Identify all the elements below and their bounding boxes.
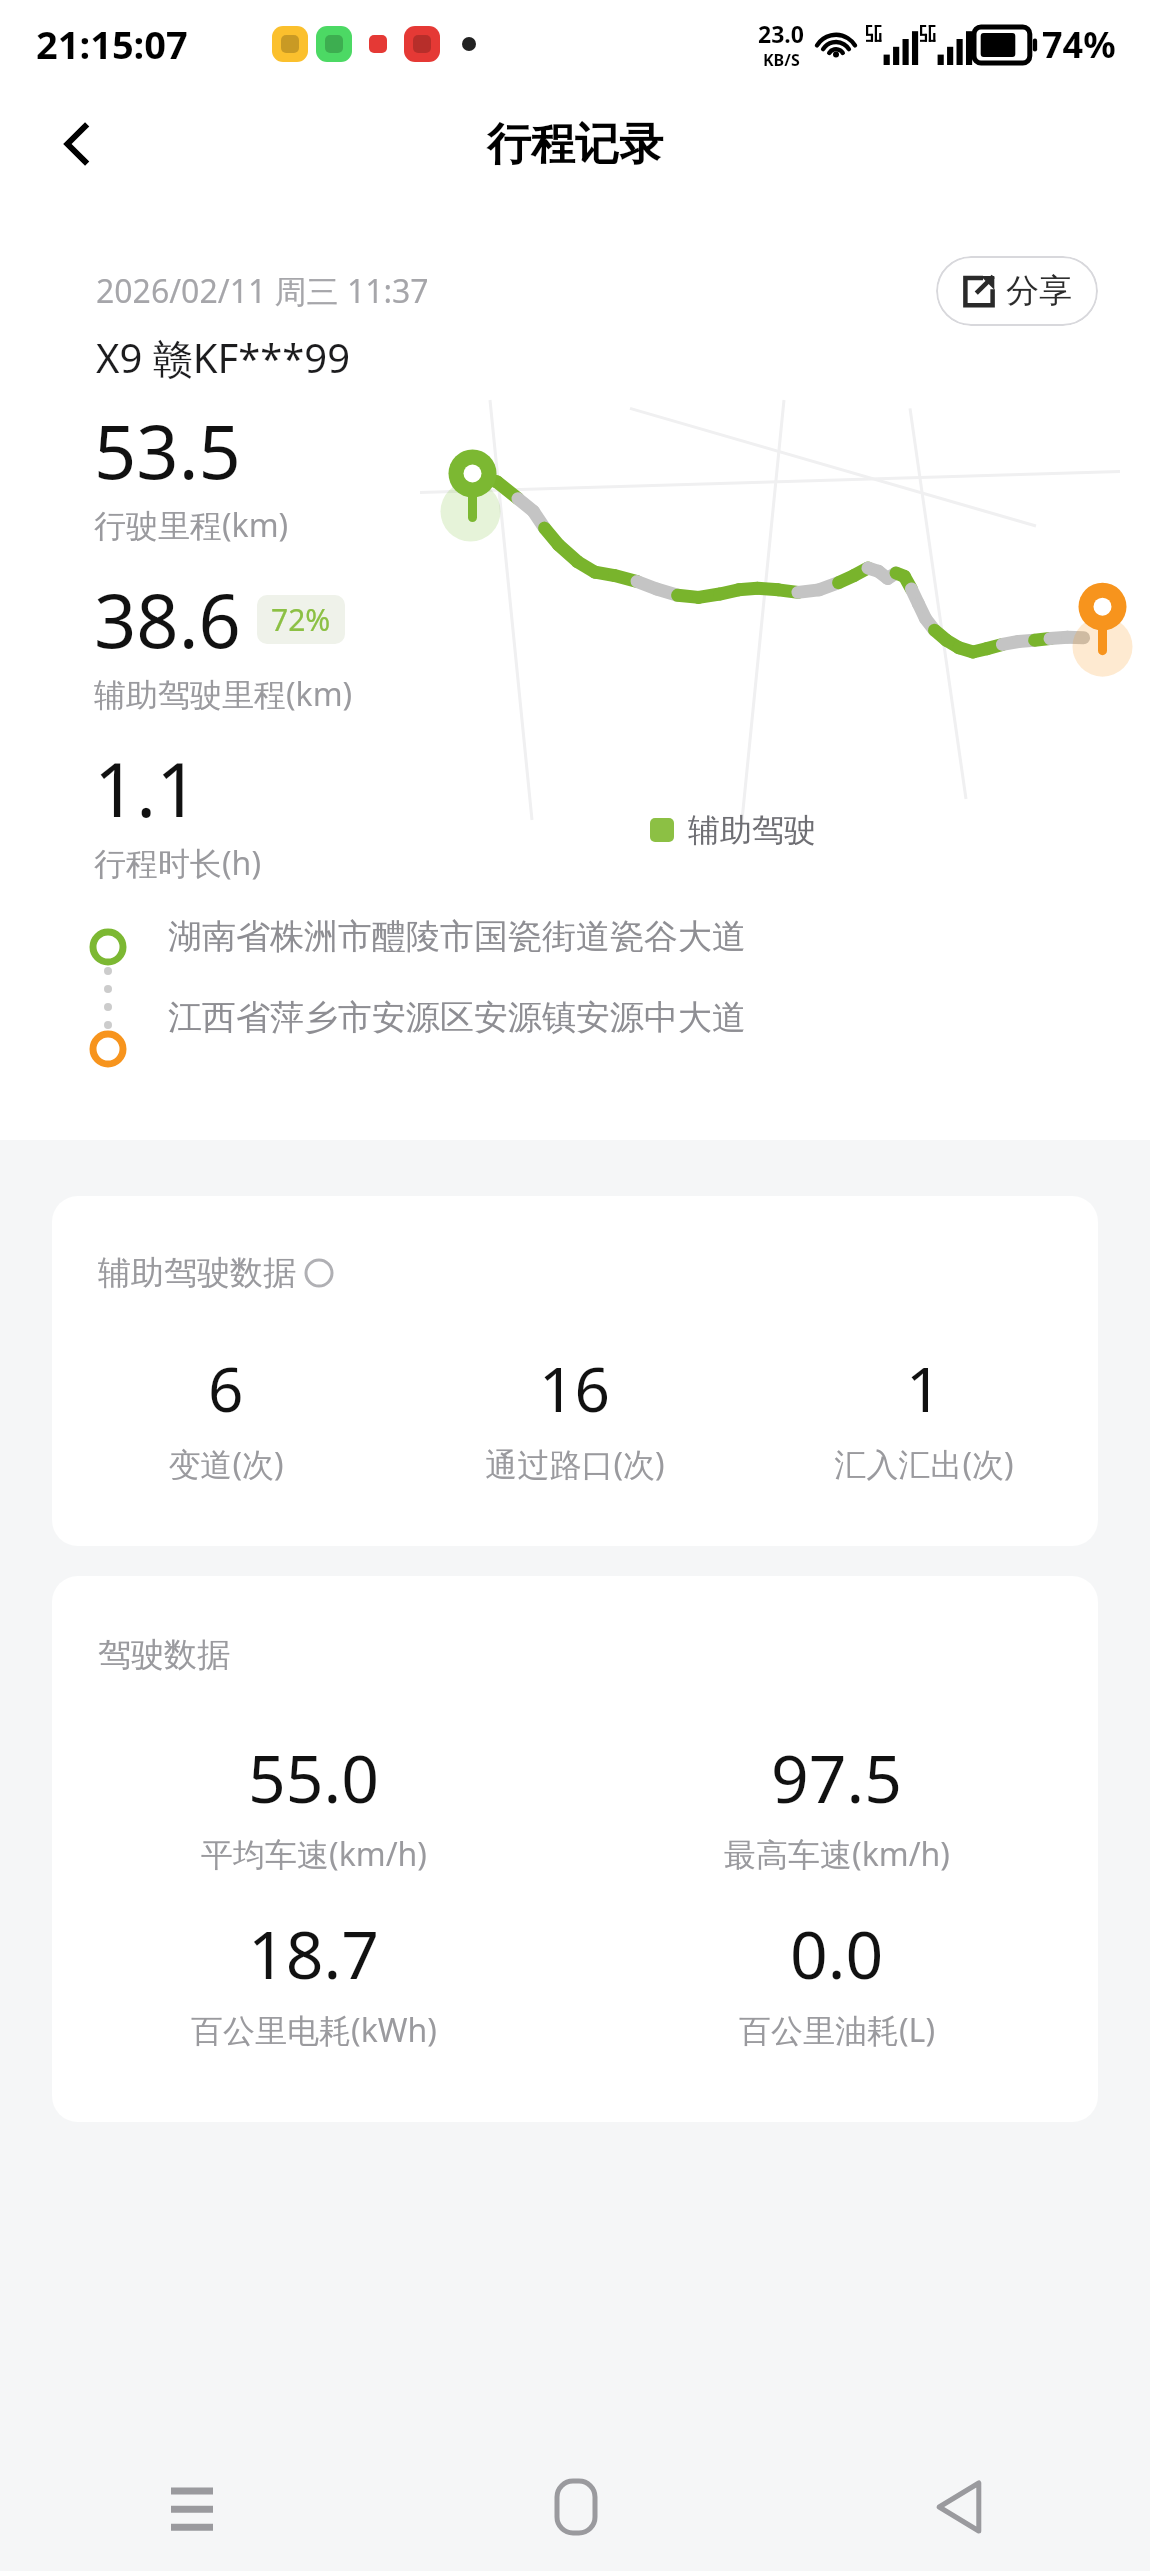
button[interactable]: 分享 <box>936 256 1098 326</box>
button[interactable]: Recents <box>0 2443 384 2571</box>
button[interactable]: Home <box>384 2443 767 2571</box>
staticText: 18.7 <box>248 1908 379 1998</box>
staticText: 行程记录 <box>487 117 663 172</box>
staticText: 平均车速(km/h) <box>201 1832 427 1876</box>
staticText: 辅助驾驶数据 <box>98 1252 296 1294</box>
staticText: 最高车速(km/h) <box>724 1832 950 1876</box>
staticText: 湖南省株洲市醴陵市国瓷街道瓷谷大道 <box>168 915 746 958</box>
button[interactable]: Back <box>36 102 120 186</box>
staticText: 53.5 <box>94 400 241 501</box>
staticText: 百公里电耗(kWh) <box>191 2008 437 2052</box>
staticText: 2026/02/11 周三 11:37 <box>96 269 429 313</box>
staticText: 6 <box>208 1346 244 1430</box>
staticText: 72% <box>271 599 331 640</box>
staticText: 1.1 <box>94 738 199 839</box>
staticText: 行程时长(h) <box>94 841 261 885</box>
staticText: 辅助驾驶 <box>688 810 816 850</box>
staticText: 23.0 <box>758 18 804 49</box>
staticText: 38.6 <box>94 569 241 670</box>
staticText: 分享 <box>1006 270 1072 312</box>
button[interactable]: Back <box>767 2443 1150 2571</box>
staticText: 通过路口(次) <box>485 1442 665 1486</box>
staticText: 0.0 <box>790 1908 884 1998</box>
staticText: 21:15:07 <box>36 18 188 70</box>
staticText: 变道(次) <box>168 1442 284 1486</box>
staticText: X9 赣KF***99 <box>96 330 351 385</box>
button[interactable]: 驾驶数据 <box>52 1576 1098 2122</box>
button[interactable]: 辅助驾驶数据 <box>52 1196 1098 1546</box>
staticText: 驾驶数据 <box>98 1634 230 1676</box>
staticText: 江西省萍乡市安源区安源镇安源中大道 <box>168 996 746 1039</box>
staticText: 74% <box>1042 20 1116 69</box>
staticText: 97.5 <box>771 1732 902 1822</box>
staticText: 行驶里程(km) <box>94 503 289 547</box>
staticText: 汇入汇出(次) <box>834 1442 1014 1486</box>
staticText: KB/S <box>763 49 800 71</box>
staticText: 1 <box>906 1346 942 1430</box>
staticText: 16 <box>539 1346 610 1430</box>
staticText: 55.0 <box>248 1732 379 1822</box>
staticText: 辅助驾驶里程(km) <box>94 672 353 716</box>
staticText: 百公里油耗(L) <box>739 2008 935 2052</box>
